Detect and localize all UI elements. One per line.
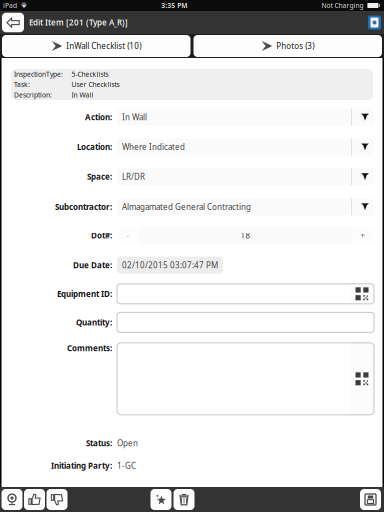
button[interactable]: Back <box>2 13 24 32</box>
staticText: Location: <box>77 142 112 152</box>
staticText: Open <box>117 438 138 448</box>
staticText: Status: <box>86 438 112 448</box>
staticText: User Checklists <box>71 80 119 89</box>
button[interactable]: Where Indicated <box>117 138 374 155</box>
staticText: Edit Item [201 (Type A_R)] <box>29 17 128 28</box>
staticText: 1-GC <box>117 460 136 471</box>
staticText: In Wall <box>71 90 93 99</box>
staticText: Photos (3) <box>276 41 314 51</box>
staticText: Space: <box>87 171 112 182</box>
button[interactable]: Approve <box>24 489 45 510</box>
staticText: InWall Checklist (10) <box>66 41 141 51</box>
staticText: Subcontractor: <box>55 201 112 212</box>
staticText: 02/10/2015 03:07:47 PM <box>122 260 218 270</box>
staticText: + <box>360 230 365 241</box>
staticText: 5-Checklists <box>71 70 108 79</box>
staticText: In Wall <box>122 112 147 122</box>
button[interactable]: Increase <box>352 227 374 244</box>
staticText: Description: <box>14 90 52 99</box>
staticText: Comments: <box>67 343 112 353</box>
staticText: Where Indicated <box>122 142 185 152</box>
staticText: Task: <box>14 80 30 89</box>
staticText: 18 <box>240 230 250 241</box>
button[interactable]: Reject <box>46 489 67 510</box>
button[interactable]: Save <box>360 489 381 510</box>
staticText: Action: <box>85 112 112 122</box>
staticText: - <box>126 230 129 241</box>
button[interactable]: Favorite <box>150 489 171 510</box>
staticText: iPad <box>3 1 17 10</box>
button[interactable]: Delete <box>173 489 194 510</box>
staticText: Equipment ID: <box>57 288 112 299</box>
staticText: Almagamated General Contracting <box>122 201 251 212</box>
staticText: InspectionType: <box>14 70 63 79</box>
button[interactable]: 02/10/2015 03:07:47 PM <box>117 257 223 274</box>
button[interactable]: In Wall <box>117 109 374 126</box>
button[interactable]: Attach photo <box>368 15 381 29</box>
staticText: Due Date: <box>73 260 112 270</box>
button[interactable]: Scan code <box>350 285 374 303</box>
staticText: Dot#: <box>91 230 112 241</box>
button[interactable]: Almagamated General Contracting <box>117 198 374 215</box>
button[interactable]: Camera <box>1 489 22 510</box>
staticText: Initiating Party: <box>51 460 112 471</box>
button[interactable]: LR/DR <box>117 168 374 185</box>
staticText: Quantity: <box>76 317 112 328</box>
button[interactable]: InWall Checklist (10) <box>2 35 190 57</box>
button[interactable]: Decrease <box>117 227 139 244</box>
staticText: Not Charging <box>321 1 363 10</box>
staticText: 3:35 PM <box>161 1 187 10</box>
button[interactable]: Scan code <box>350 343 374 415</box>
staticText: LR/DR <box>122 171 145 182</box>
button[interactable]: Photos (3) <box>193 35 382 57</box>
